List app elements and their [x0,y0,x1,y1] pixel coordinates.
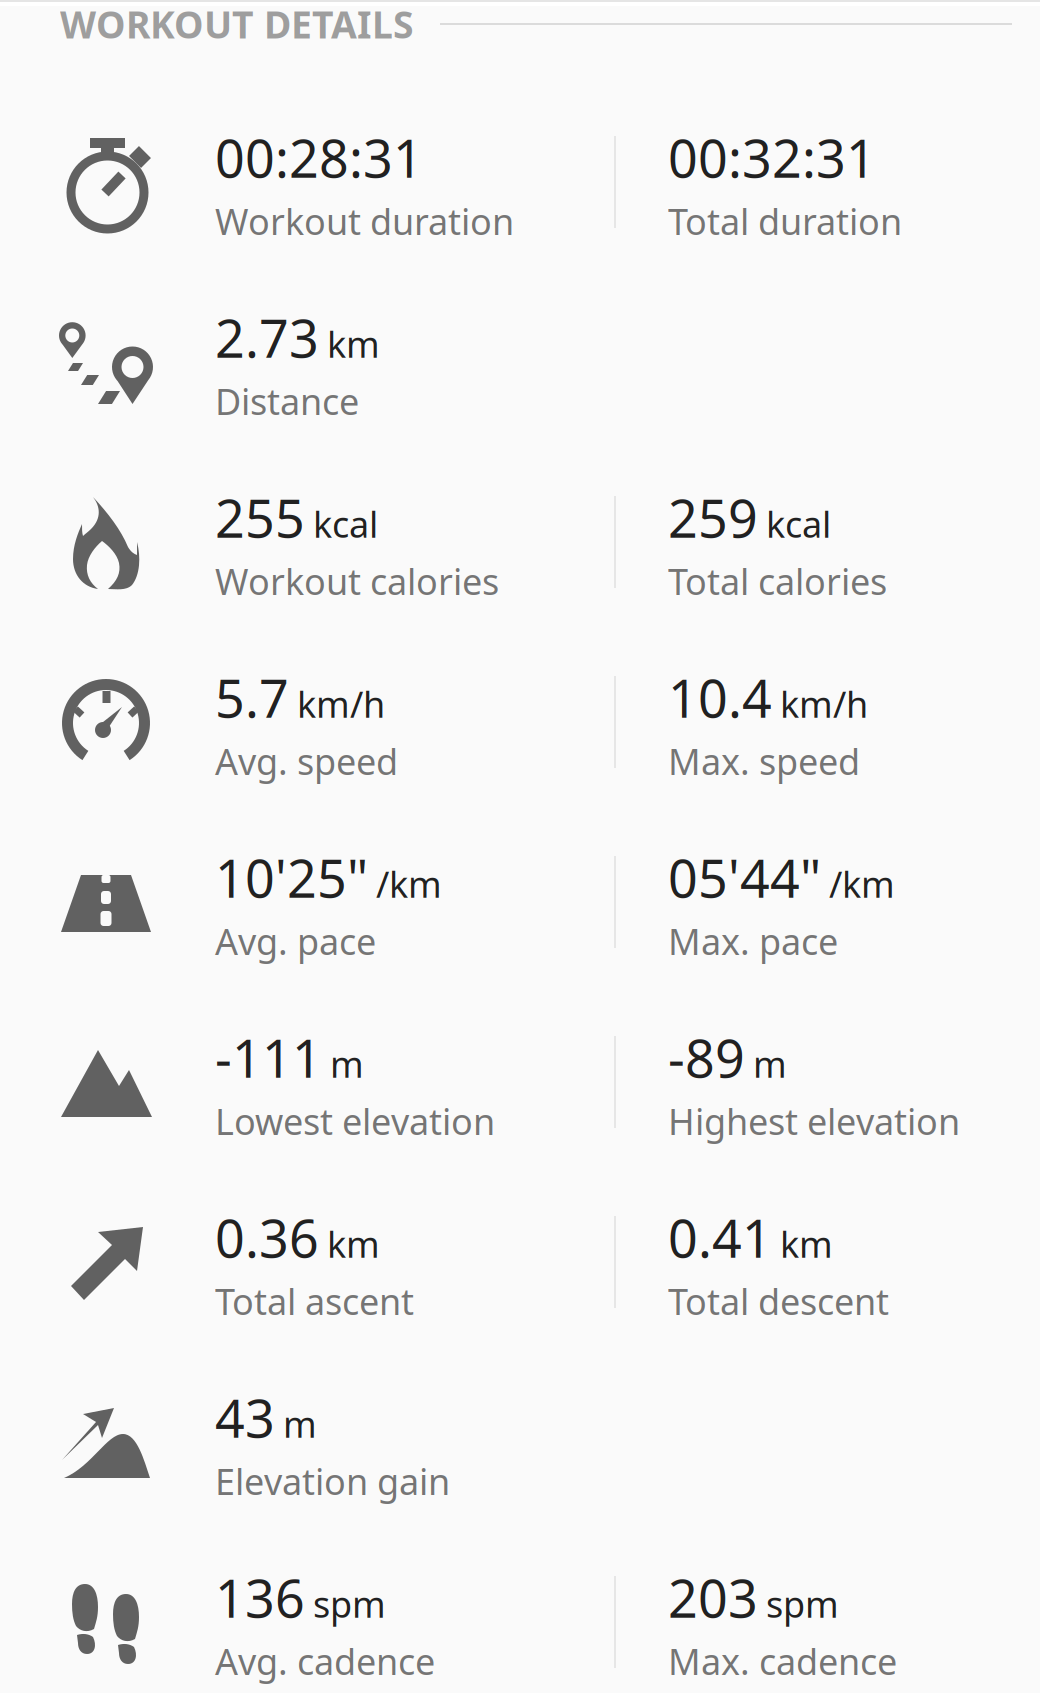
staticText: 203 [668,1563,758,1632]
staticText: Total duration [668,197,902,245]
staticText: km [780,1220,833,1268]
staticText: 00:32:31 [668,123,876,192]
staticText: 10'25" [215,843,368,912]
staticText: 10.4 [668,663,772,732]
staticText: /km [376,860,442,908]
staticText: Max. speed [668,737,860,785]
staticText: Workout calories [215,557,499,605]
staticText: 136 [215,1563,305,1632]
staticText: spm [766,1580,839,1628]
staticText: 255 [215,483,305,552]
staticText: m [330,1040,364,1088]
staticText: Workout duration [215,197,514,245]
staticText: 43 [215,1383,275,1452]
staticText: Max. pace [668,917,838,965]
staticText: km/h [780,680,868,728]
staticText: km [327,1220,380,1268]
staticText: kcal [313,500,378,548]
staticText: 05'44" [668,843,821,912]
staticText: 2.73 [215,303,319,372]
staticText: Total descent [668,1277,889,1325]
staticText: WORKOUT DETAILS [60,0,414,49]
staticText: kcal [766,500,831,548]
staticText: Highest elevation [668,1097,960,1145]
staticText: Lowest elevation [215,1097,495,1145]
staticText: Distance [215,377,359,425]
staticText: -89 [668,1023,745,1092]
staticText: Avg. speed [215,737,398,785]
staticText: m [283,1400,317,1448]
staticText: spm [313,1580,386,1628]
staticText: Total ascent [215,1277,414,1325]
staticText: m [753,1040,787,1088]
staticText: km/h [297,680,385,728]
staticText: Total calories [668,557,887,605]
staticText: 0.36 [215,1203,319,1272]
staticText: 5.7 [215,663,289,732]
staticText: Avg. cadence [215,1637,435,1685]
staticText: 0.41 [668,1203,772,1272]
staticText: km [327,320,380,368]
staticText: /km [829,860,895,908]
staticText: 259 [668,483,758,552]
staticText: 00:28:31 [215,123,423,192]
staticText: Max. cadence [668,1637,897,1685]
staticText: Elevation gain [215,1457,450,1505]
staticText: Avg. pace [215,917,376,965]
staticText: -111 [215,1023,322,1092]
